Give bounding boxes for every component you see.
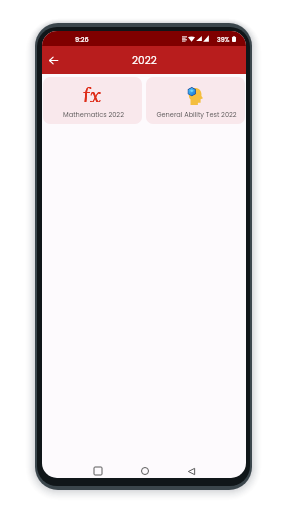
staticText: ƒx	[83, 82, 102, 102]
button[interactable]: Back	[184, 464, 198, 478]
staticText: ƒx	[83, 82, 102, 102]
button[interactable]: ƒx	[43, 77, 142, 124]
staticText: 9:26	[75, 35, 89, 44]
button[interactable]: Home	[138, 464, 152, 478]
staticText: 2022	[132, 53, 157, 68]
staticText: ƒx	[83, 82, 102, 102]
button[interactable]: Recent apps	[91, 464, 105, 478]
button[interactable]: Back	[43, 50, 63, 70]
staticText: Mathematics 2022	[63, 110, 124, 119]
staticText: General Ability Test 2022	[156, 110, 237, 119]
staticText: 39%	[217, 35, 230, 44]
button[interactable]: General Ability Test 2022	[146, 77, 245, 124]
